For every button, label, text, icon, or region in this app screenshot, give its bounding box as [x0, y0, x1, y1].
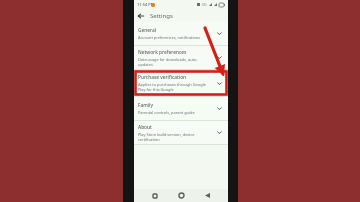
button[interactable]: General [134, 22, 228, 45]
staticText: Network preferences [138, 49, 187, 56]
staticText: Applies to purchases through Google Play… [138, 82, 212, 92]
staticText: Settings [150, 12, 173, 20]
staticText: Family [138, 102, 153, 109]
button[interactable]: Purchase verification [134, 70, 228, 96]
staticText: Data usage for downloads, auto-updates [138, 57, 212, 67]
button[interactable]: Home [176, 190, 187, 201]
button[interactable]: Network preferences [134, 46, 228, 69]
staticText: General [138, 27, 156, 34]
staticText: 11:54 PM [137, 2, 155, 7]
staticText: Account preferences, notifications [138, 35, 201, 40]
button[interactable]: About [134, 121, 228, 144]
button[interactable]: Recent apps [149, 190, 160, 201]
staticText: Purchase verification [138, 74, 187, 81]
staticText: 5G [202, 2, 207, 7]
staticText: Play Store build version, device certifi… [138, 132, 212, 142]
button[interactable]: Family [134, 97, 228, 120]
staticText: Parental controls, parent guide [138, 110, 195, 115]
staticText: About [138, 124, 152, 131]
button[interactable]: Back [202, 190, 213, 201]
button[interactable]: Back [136, 11, 146, 21]
